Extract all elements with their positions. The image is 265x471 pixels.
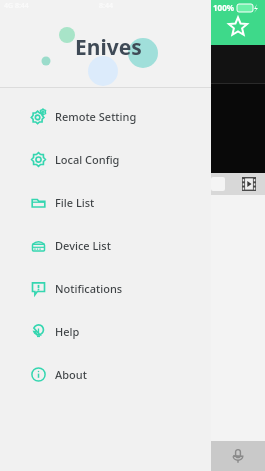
- button[interactable]: Voice input: [211, 441, 265, 471]
- button[interactable]: Favorite: [226, 15, 250, 39]
- staticText: File List: [55, 195, 95, 210]
- button[interactable]: About: [0, 353, 211, 396]
- button[interactable]: Video: [240, 175, 258, 193]
- button[interactable]: Remote Setting: [0, 95, 211, 138]
- button[interactable]: File List: [0, 181, 211, 224]
- button[interactable]: Notifications: [0, 267, 211, 310]
- button[interactable]: Device List: [0, 224, 211, 267]
- staticText: 100%: [213, 2, 234, 13]
- button[interactable]: Local Config: [0, 138, 211, 181]
- staticText: Notifications: [55, 281, 123, 296]
- staticText: Local Config: [55, 152, 120, 167]
- button[interactable]: Help: [0, 310, 211, 353]
- staticText: Device List: [55, 238, 111, 253]
- staticText: Remote Setting: [55, 109, 137, 124]
- staticText: Help: [55, 324, 80, 339]
- staticText: About: [55, 367, 87, 382]
- staticText: Enives: [75, 33, 142, 62]
